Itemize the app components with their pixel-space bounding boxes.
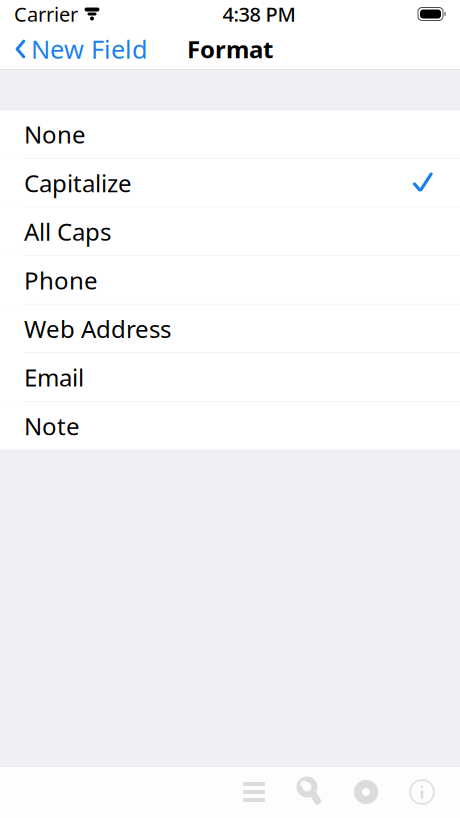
- staticText: Capitalize: [24, 167, 132, 199]
- button[interactable]: Info: [394, 766, 450, 818]
- staticText: All Caps: [24, 216, 111, 247]
- staticText: Email: [24, 361, 84, 393]
- staticText: 4:38 PM: [222, 1, 295, 27]
- staticText: None: [24, 118, 86, 150]
- button[interactable]: New Field: [0, 28, 158, 70]
- button[interactable]: Web Address: [0, 304, 460, 353]
- button[interactable]: Email: [0, 353, 460, 402]
- button[interactable]: Note: [0, 402, 460, 450]
- staticText: Web Address: [24, 313, 171, 345]
- staticText: New Field: [31, 32, 148, 66]
- button[interactable]: Capitalize: [0, 159, 460, 207]
- button[interactable]: All Caps: [0, 207, 460, 256]
- button[interactable]: Settings: [338, 766, 394, 818]
- staticText: Phone: [24, 264, 98, 296]
- staticText: Carrier: [14, 1, 78, 27]
- button[interactable]: None: [0, 110, 460, 159]
- staticText: Note: [24, 410, 80, 442]
- button[interactable]: Phone: [0, 256, 460, 304]
- button[interactable]: Tools: [282, 766, 338, 818]
- staticText: Format: [187, 33, 273, 65]
- button[interactable]: List: [226, 766, 282, 818]
